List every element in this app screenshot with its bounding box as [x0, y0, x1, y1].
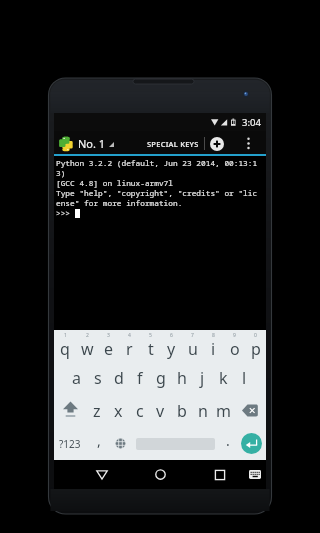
staticText: [GCC 4.8] on linux-armv7l	[56, 178, 173, 189]
button[interactable]: f	[129, 362, 150, 394]
staticText: h	[177, 367, 187, 389]
staticText: SPECIAL KEYS	[147, 139, 199, 149]
staticText: ,	[97, 431, 101, 450]
button[interactable]: s	[87, 362, 108, 394]
staticText: y	[167, 338, 176, 360]
staticText: j	[200, 367, 205, 389]
staticText: 5	[149, 332, 152, 339]
button[interactable]: Switch keyboard	[244, 462, 266, 487]
staticText: r	[126, 338, 133, 360]
staticText: w	[81, 338, 94, 360]
staticText: 9	[233, 332, 236, 339]
staticText: ?123	[59, 437, 81, 451]
button[interactable]: 4	[119, 330, 140, 362]
button[interactable]: 0	[245, 330, 266, 362]
staticText: 1	[64, 332, 67, 339]
staticText: k	[219, 367, 228, 389]
button[interactable]: Backspace	[234, 394, 266, 427]
staticText: ense" for more information.	[56, 198, 183, 209]
staticText: n	[198, 400, 208, 422]
button[interactable]: ?123	[54, 427, 86, 460]
button[interactable]: d	[108, 362, 129, 394]
staticText: x	[114, 400, 123, 422]
staticText: q	[60, 338, 70, 360]
staticText: 8	[212, 332, 215, 339]
staticText: o	[230, 338, 240, 360]
button[interactable]: 3	[98, 330, 119, 362]
button[interactable]: l	[234, 362, 255, 394]
button[interactable]: g	[150, 362, 171, 394]
button[interactable]: Add	[205, 131, 229, 156]
staticText: e	[104, 338, 114, 360]
staticText: i	[211, 338, 216, 360]
button[interactable]: Change keyboard language	[111, 427, 129, 460]
button[interactable]: More options	[240, 131, 256, 156]
button[interactable]: 6	[161, 330, 182, 362]
staticText: Type "help", "copyright", "credits" or "…	[56, 188, 258, 199]
staticText: t	[148, 338, 154, 360]
staticText: No. 1	[78, 136, 106, 151]
button[interactable]: Enter	[236, 427, 266, 460]
button[interactable]: 8	[203, 330, 224, 362]
button[interactable]: 9	[224, 330, 245, 362]
button[interactable]: 2	[76, 330, 98, 362]
button[interactable]: 1	[54, 330, 76, 362]
button[interactable]: Back	[84, 462, 120, 487]
button[interactable]: No. 1	[54, 131, 115, 156]
staticText: p	[251, 338, 261, 360]
button[interactable]: z	[86, 394, 108, 427]
staticText: z	[93, 400, 101, 422]
staticText: m	[216, 400, 231, 422]
button[interactable]: n	[192, 394, 213, 427]
button[interactable]: 5	[140, 330, 161, 362]
button[interactable]: SPECIAL KEYS	[144, 131, 202, 156]
button[interactable]: c	[129, 394, 150, 427]
button[interactable]: m	[213, 394, 234, 427]
staticText: 3	[107, 332, 110, 339]
staticText: 6	[170, 332, 173, 339]
button[interactable]: v	[150, 394, 171, 427]
staticText: d	[114, 367, 124, 389]
button[interactable]: Recent apps	[202, 462, 238, 487]
button[interactable]: b	[171, 394, 192, 427]
staticText: c	[136, 400, 144, 422]
button[interactable]: x	[108, 394, 129, 427]
staticText: 0	[254, 332, 257, 339]
staticText: s	[94, 367, 102, 389]
button[interactable]: Home	[142, 462, 178, 487]
staticText: a	[72, 367, 81, 389]
staticText: 3)	[56, 168, 66, 179]
staticText: b	[177, 400, 187, 422]
staticText: l	[242, 367, 247, 389]
button[interactable]: j	[192, 362, 213, 394]
button[interactable]: k	[213, 362, 234, 394]
staticText: Python 3.2.2 (default, Jun 23 2014, 00:1…	[56, 158, 258, 169]
staticText: .	[226, 431, 230, 450]
button[interactable]: Shift	[54, 394, 86, 427]
staticText: u	[188, 338, 198, 360]
staticText: v	[156, 400, 165, 422]
staticText: 7	[191, 332, 194, 339]
button[interactable]: Space	[136, 427, 215, 460]
staticText: 2	[86, 332, 89, 339]
button[interactable]: h	[171, 362, 192, 394]
button[interactable]: ,	[86, 427, 111, 460]
button[interactable]: a	[65, 362, 87, 394]
staticText: f	[137, 367, 143, 389]
button[interactable]: .	[219, 427, 236, 460]
staticText: 4	[128, 332, 131, 339]
staticText: g	[156, 367, 166, 389]
staticText: 3:04	[242, 116, 261, 129]
button[interactable]: 7	[182, 330, 203, 362]
staticText: >>>	[56, 208, 71, 219]
